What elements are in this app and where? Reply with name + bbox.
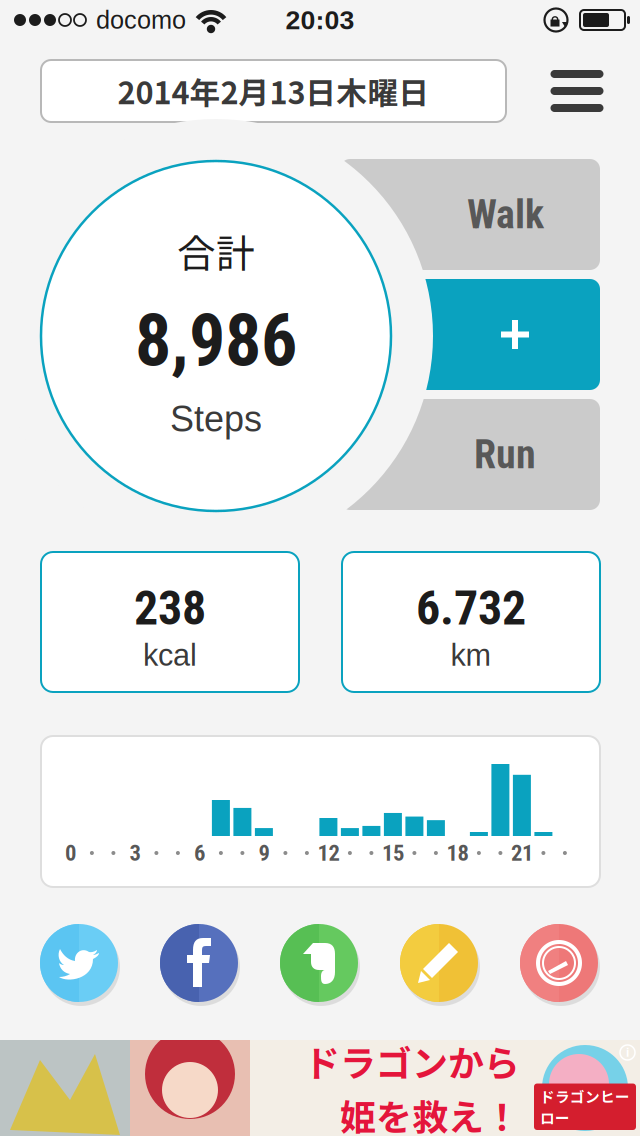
staticText: 9 [258, 840, 269, 866]
button[interactable]: Menu [547, 60, 607, 122]
staticText: ドラゴンから [304, 1035, 520, 1087]
button[interactable]: 6.732 [342, 552, 600, 692]
staticText: 238 [134, 580, 206, 636]
staticText: 21 [511, 840, 533, 866]
button[interactable]: Walk [340, 159, 600, 270]
button[interactable]: Evernote [280, 924, 358, 1002]
staticText: km [450, 638, 491, 672]
button[interactable]: 2014年2月13日木曜日 [41, 60, 506, 122]
staticText: 合計 [177, 223, 255, 279]
staticText: 3 [129, 840, 140, 866]
staticText: 2014年2月13日木曜日 [117, 69, 429, 113]
button[interactable]: Add activity [340, 279, 600, 390]
button[interactable]: Facebook [160, 924, 238, 1002]
staticText: ドラゴンヒーロー [540, 1085, 630, 1128]
staticText: 18 [446, 840, 468, 866]
staticText: kcal [143, 638, 197, 672]
staticText: 12 [317, 840, 339, 866]
staticText: 姫を救え！ [340, 1089, 520, 1136]
button[interactable]: Dashboard [520, 924, 598, 1002]
button[interactable]: Memo [400, 924, 478, 1002]
staticText: 20:03 [285, 5, 354, 35]
button[interactable]: Twitter [40, 924, 118, 1002]
staticText: Walk [467, 191, 544, 238]
button[interactable]: Advertisement [0, 1040, 640, 1136]
button[interactable]: Total 8,986 Steps [41, 161, 391, 511]
staticText: i [626, 1046, 629, 1059]
button[interactable]: 238 [41, 552, 299, 692]
staticText: Run [474, 431, 536, 478]
staticText: 0 [65, 840, 76, 866]
staticText: 6 [194, 840, 205, 866]
button[interactable]: Run [340, 399, 600, 510]
staticText: 8,986 [135, 299, 297, 383]
staticText: 15 [382, 840, 404, 866]
staticText: Steps [170, 399, 262, 439]
staticText: 6.732 [416, 580, 526, 636]
staticText: docomo [96, 6, 186, 34]
